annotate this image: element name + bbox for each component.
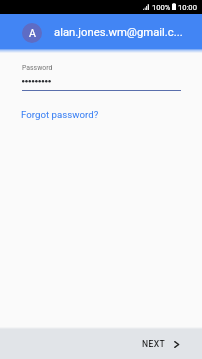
staticText: 10:00 [178, 3, 197, 12]
other: Mobile signal full [143, 4, 149, 10]
staticText: A [29, 27, 36, 39]
staticText: Forgot password? [21, 109, 99, 120]
staticText: NEXT [142, 339, 166, 349]
button[interactable]: NEXT [136, 333, 186, 355]
other: Battery full [172, 3, 176, 10]
staticText: Password [22, 64, 53, 72]
staticText: 100% [152, 3, 171, 12]
staticText: alan.jones.wm@gmail.c... [54, 26, 183, 39]
button[interactable]: A [0, 14, 202, 49]
button[interactable]: Forgot password? [15, 104, 105, 125]
